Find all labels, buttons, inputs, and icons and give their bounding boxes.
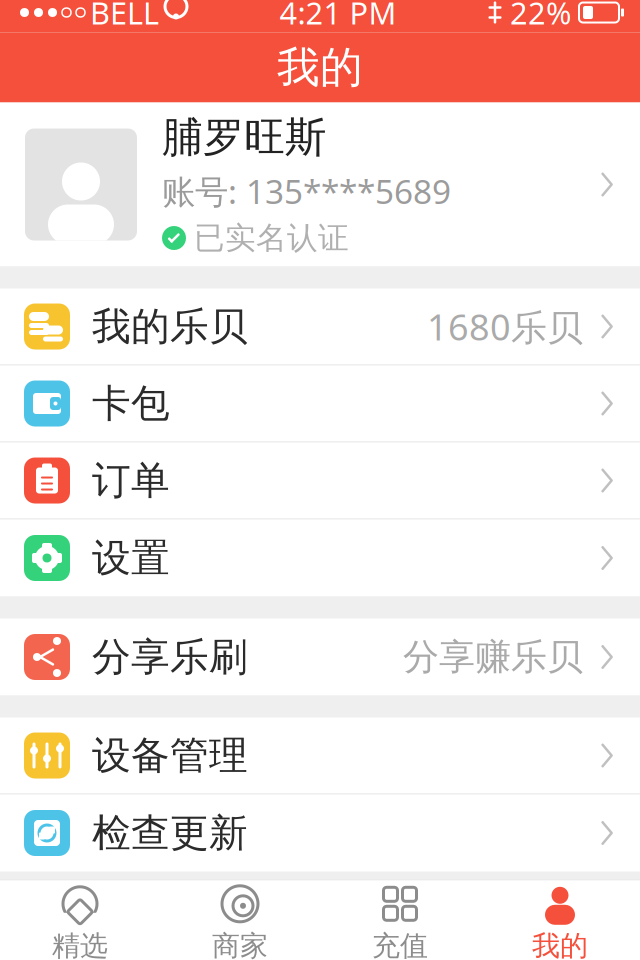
button[interactable]: 我的: [480, 880, 640, 960]
staticText: 分享乐刷: [92, 633, 248, 681]
button[interactable]: 商家: [160, 880, 320, 960]
button[interactable]: 卡包: [0, 365, 640, 442]
staticText: 1680乐贝: [427, 303, 583, 350]
staticText: 4:21 PM: [279, 0, 396, 33]
staticText: 我的乐贝: [92, 303, 248, 350]
staticText: 订单: [92, 457, 170, 504]
staticText: 分享赚乐贝: [403, 635, 583, 679]
staticText: 精选: [52, 929, 108, 960]
button[interactable]: 精选: [0, 880, 160, 960]
staticText: 检查更新: [92, 809, 248, 857]
staticText: 脯罗旺斯: [162, 112, 326, 163]
button[interactable]: 订单: [0, 442, 640, 519]
staticText: 设置: [92, 534, 170, 582]
button[interactable]: 分享乐刷: [0, 618, 640, 695]
button[interactable]: 设备管理: [0, 717, 640, 794]
staticText: 设备管理: [92, 732, 248, 779]
staticText: 已实名认证: [194, 219, 349, 257]
button[interactable]: 充值: [320, 880, 480, 960]
staticText: 我的: [277, 41, 363, 94]
button[interactable]: 检查更新: [0, 794, 640, 871]
staticText: 22%: [510, 0, 571, 33]
button[interactable]: 设置: [0, 519, 640, 596]
staticText: BELL: [90, 0, 159, 33]
button[interactable]: 我的乐贝: [0, 288, 640, 365]
staticText: 充值: [372, 929, 428, 960]
staticText: 商家: [212, 929, 268, 960]
staticText: 我的: [532, 929, 588, 960]
staticText: 账号: 135****5689: [162, 169, 451, 213]
button[interactable]: 脯罗旺斯: [0, 102, 640, 266]
staticText: 卡包: [92, 380, 170, 427]
